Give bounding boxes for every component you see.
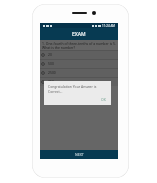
staticText: 2500 bbox=[48, 70, 56, 75]
staticText: EXAM bbox=[72, 31, 86, 38]
staticText: Congratulation Your Answer is Correct... bbox=[48, 84, 104, 94]
staticText: 250 bbox=[48, 79, 54, 84]
staticText: 11:24 AM bbox=[102, 24, 116, 28]
button[interactable]: 2500 bbox=[40, 68, 118, 77]
button[interactable]: OK bbox=[101, 97, 106, 102]
staticText: NEXT bbox=[75, 152, 84, 157]
button[interactable]: NEXT bbox=[40, 150, 118, 159]
button[interactable]: 250 bbox=[40, 77, 118, 86]
button[interactable]: 20 bbox=[40, 50, 118, 59]
staticText: 20 bbox=[48, 52, 52, 57]
button[interactable]: 500 bbox=[40, 59, 118, 68]
staticText: 500 bbox=[48, 61, 54, 66]
staticText: 1. One-fourth of three-tenths of a numbe… bbox=[42, 41, 116, 50]
staticText: OK bbox=[101, 97, 106, 102]
